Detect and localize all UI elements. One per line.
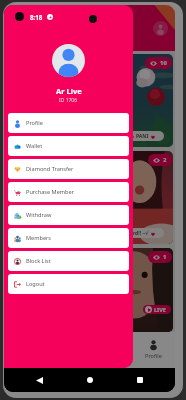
staticText: Purchase Member	[26, 188, 74, 196]
staticText: Profile	[26, 119, 43, 127]
button[interactable]: 2	[6, 151, 173, 244]
button[interactable]: Block List	[8, 251, 129, 271]
staticText: erd!! ~√	[130, 230, 149, 237]
staticText: Wallet	[26, 142, 43, 150]
staticText: Logout	[26, 280, 45, 288]
button[interactable]: Message	[89, 332, 132, 368]
staticText: Ar Live	[56, 86, 82, 96]
staticText: LIVE	[154, 306, 166, 313]
staticText: Members	[26, 234, 52, 242]
button[interactable]: Back	[34, 375, 44, 385]
staticText: ID 1706	[59, 97, 78, 104]
staticText: Profile	[145, 352, 162, 360]
button[interactable]: Home	[85, 375, 95, 385]
staticText: PANI	[136, 133, 149, 140]
button[interactable]: Account	[153, 21, 168, 36]
staticText: Withdraw	[26, 211, 52, 219]
button[interactable]: Wallet	[8, 136, 129, 156]
button[interactable]: 10	[6, 54, 173, 147]
button[interactable]: Diamond Transfer	[8, 159, 129, 179]
button[interactable]: Members	[8, 228, 129, 248]
button[interactable]: Withdraw	[8, 205, 129, 225]
staticText: 2	[163, 156, 167, 164]
button[interactable]: Logout	[8, 274, 129, 294]
button[interactable]: 1	[6, 248, 173, 332]
staticText: 1	[163, 253, 167, 261]
button[interactable]: Profile	[132, 332, 175, 368]
staticText: Diamond Transfer	[26, 165, 74, 173]
other: Phone screen	[4, 5, 175, 392]
button[interactable]: Recents	[135, 375, 145, 385]
staticText: 10	[160, 59, 167, 67]
button[interactable]: Profile	[8, 113, 129, 133]
button[interactable]: Purchase Member	[8, 182, 129, 202]
staticText: Block List	[26, 257, 51, 265]
staticText: 8:18	[30, 13, 43, 21]
